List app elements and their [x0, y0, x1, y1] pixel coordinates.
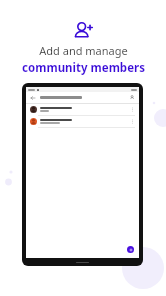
- button[interactable]: More options: [130, 117, 135, 126]
- button[interactable]: Add member: [130, 95, 135, 100]
- staticText: Add and manage: [39, 43, 128, 58]
- button[interactable]: Add: [127, 246, 134, 253]
- staticText: community members: [22, 60, 145, 76]
- button[interactable]: More options: [26, 104, 139, 115]
- button[interactable]: Back: [30, 95, 36, 101]
- button[interactable]: Back: [26, 92, 139, 103]
- button[interactable]: More options: [130, 105, 135, 114]
- button[interactable]: More options: [26, 116, 139, 127]
